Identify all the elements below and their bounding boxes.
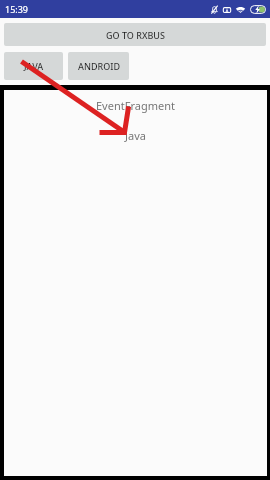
staticText: ANDROID (78, 60, 120, 72)
staticText: JAVA (24, 60, 44, 72)
other: Vibrate (223, 6, 231, 14)
staticText: GO TO RXBUS (106, 29, 165, 41)
staticText: 15:39 (5, 3, 29, 15)
other: Wi-Fi (236, 6, 245, 14)
button[interactable]: GO TO RXBUS (4, 23, 266, 46)
staticText: EventFragment (96, 98, 175, 113)
other: Notifications muted (211, 5, 218, 14)
button[interactable]: ANDROID (68, 52, 129, 80)
staticText: Java (125, 128, 146, 143)
other: Battery charging (250, 5, 266, 14)
button[interactable]: JAVA (4, 52, 63, 80)
